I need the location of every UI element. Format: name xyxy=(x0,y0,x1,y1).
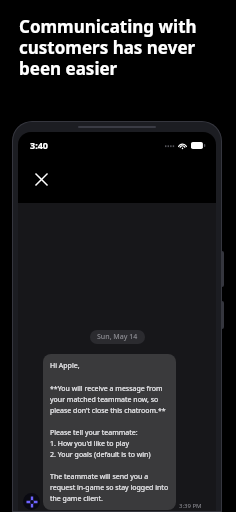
button[interactable]: Hi Apple, **You will receive a message f… xyxy=(43,354,176,510)
staticText: Sun, May 14 xyxy=(97,332,138,342)
staticText: 3:39 PM xyxy=(179,502,202,510)
staticText: Hi Apple, **You will receive a message f… xyxy=(50,361,169,503)
staticText: 3:40 xyxy=(30,139,48,151)
button[interactable]: Close xyxy=(28,166,54,192)
staticText: Communicating with customers has never b… xyxy=(19,15,197,80)
button[interactable]: Sender avatar xyxy=(23,493,40,510)
